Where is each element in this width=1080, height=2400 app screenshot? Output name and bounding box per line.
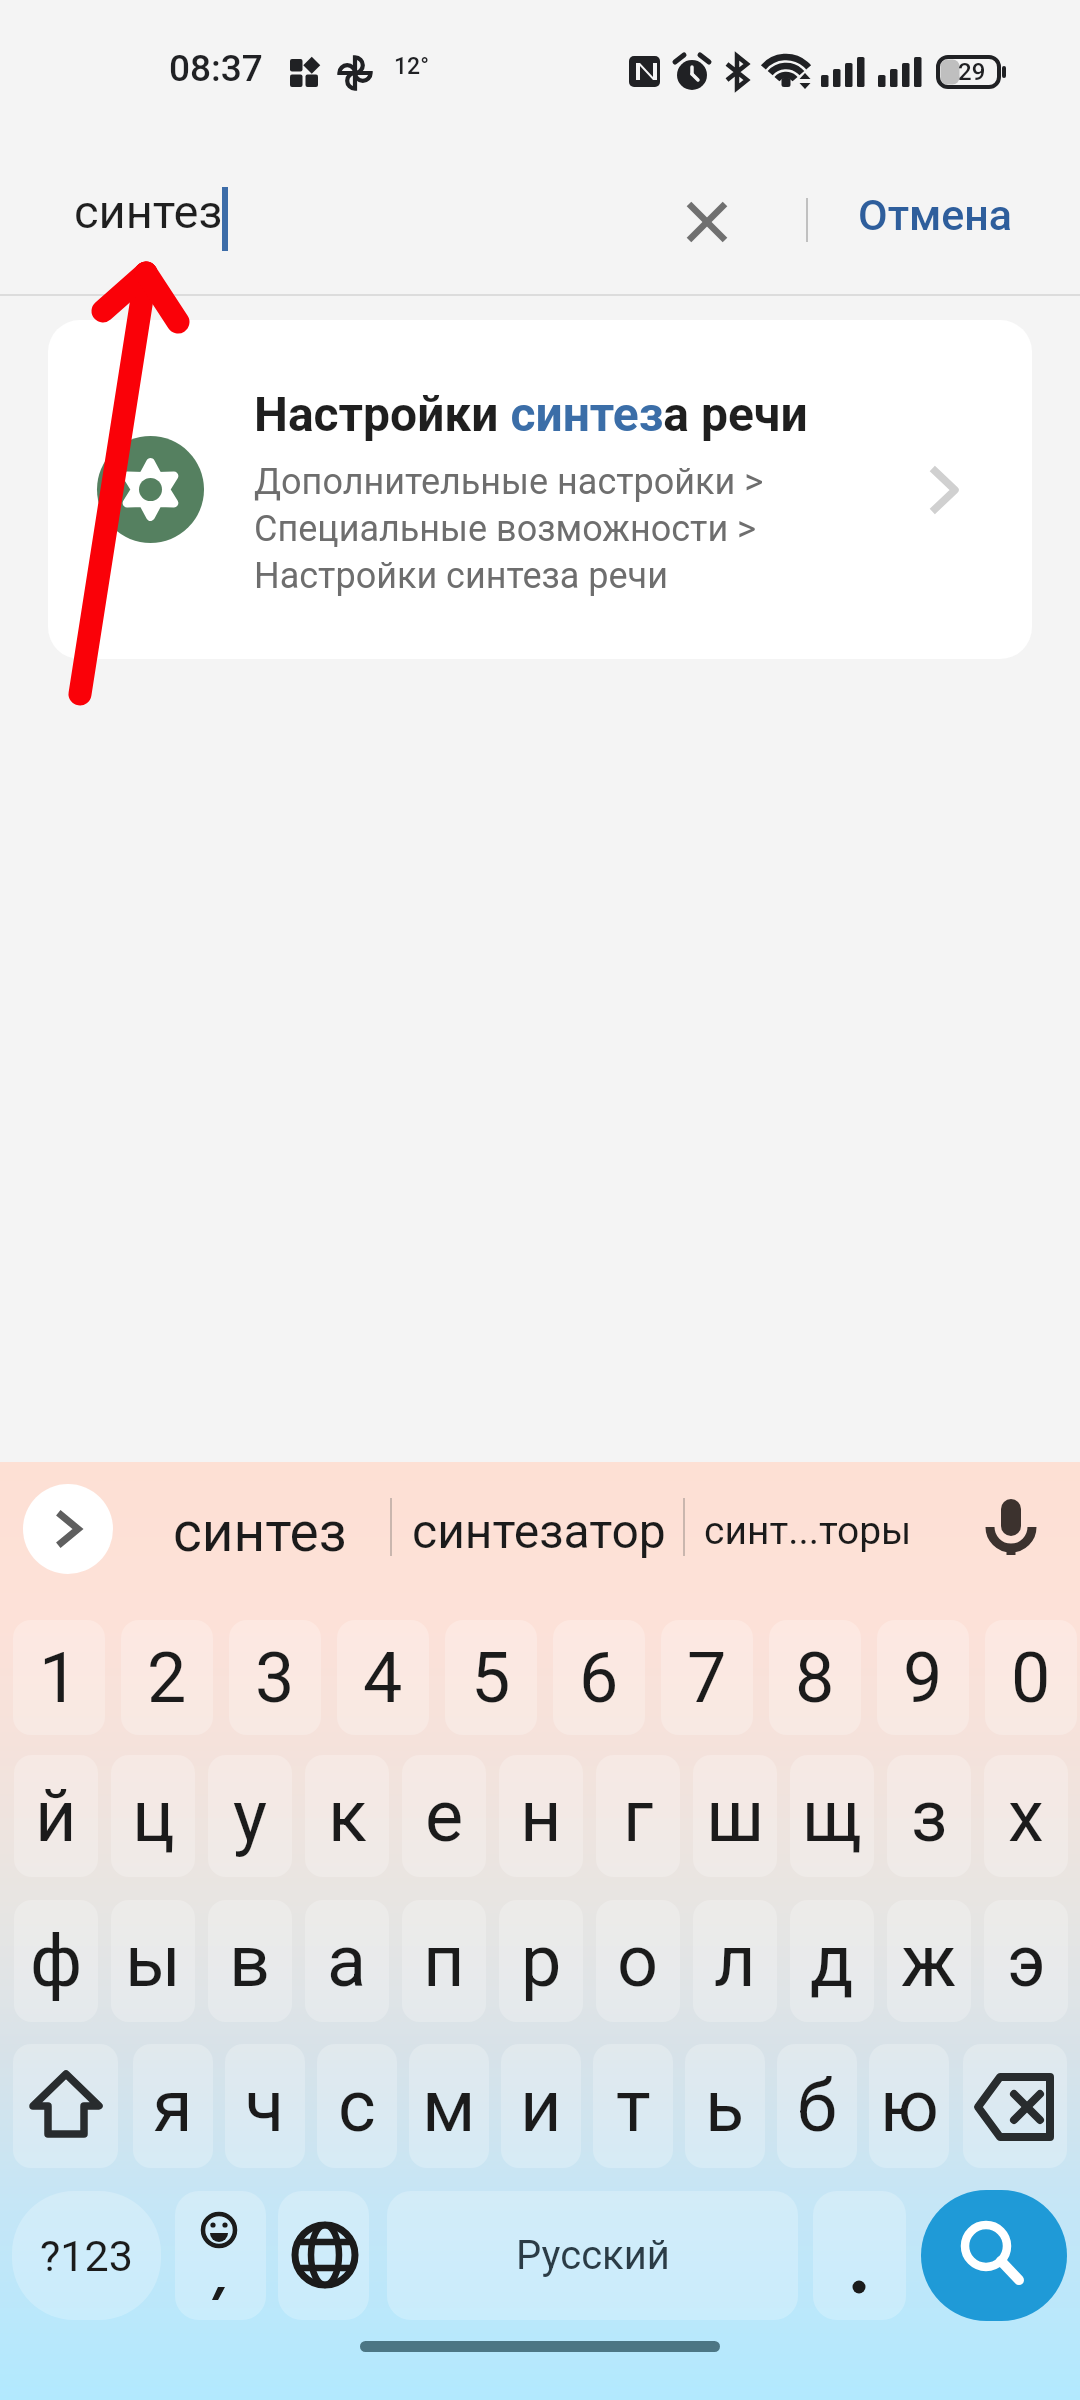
button[interactable]: 9 — [877, 1620, 969, 1735]
button[interactable]: Shift — [13, 2044, 118, 2168]
button[interactable]: ю — [869, 2044, 949, 2168]
button[interactable]: у — [208, 1755, 292, 1877]
staticText: и — [520, 2064, 562, 2148]
button[interactable]: о — [596, 1900, 680, 2022]
button[interactable]: б — [777, 2044, 857, 2168]
button[interactable]: ы — [111, 1900, 195, 2022]
button[interactable]: 1 — [13, 1620, 105, 1735]
staticText: 9 — [903, 1637, 943, 1719]
button[interactable]: щ — [790, 1755, 874, 1877]
staticText: 0 — [1011, 1637, 1051, 1719]
button[interactable]: 2 — [121, 1620, 213, 1735]
staticText: 8 — [795, 1637, 835, 1719]
staticText: м — [422, 2064, 476, 2148]
button[interactable]: 8 — [769, 1620, 861, 1735]
button[interactable]: ц — [111, 1755, 195, 1877]
button[interactable]: Отмена — [838, 168, 1033, 262]
button[interactable]: с — [317, 2044, 397, 2168]
button[interactable]: 0 — [985, 1620, 1077, 1735]
button[interactable]: Clear — [663, 178, 751, 266]
button[interactable]: а — [305, 1900, 389, 2022]
button[interactable]: д — [790, 1900, 874, 2022]
staticText: ы — [125, 1919, 181, 2003]
button[interactable]: я — [133, 2044, 213, 2168]
button[interactable]: 5 — [445, 1620, 537, 1735]
staticText: е — [425, 1774, 464, 1858]
staticText: синт...торы — [704, 1508, 912, 1554]
button[interactable]: ф — [14, 1900, 98, 2022]
staticText: Настройки синтеза речи — [254, 555, 668, 597]
staticText: ч — [245, 2064, 285, 2148]
staticText: э — [1007, 1919, 1046, 2003]
staticText: ж — [901, 1919, 957, 2003]
button[interactable]: Expand suggestions — [23, 1484, 113, 1574]
staticText: 2 — [147, 1637, 187, 1719]
button[interactable]: ?123 — [12, 2191, 161, 2320]
button[interactable]: Emoji — [175, 2191, 266, 2320]
button[interactable]: н — [499, 1755, 583, 1877]
staticText: ?123 — [40, 2231, 133, 2281]
button[interactable]: 6 — [553, 1620, 645, 1735]
button[interactable]: синтезатор — [412, 1503, 666, 1559]
staticText: р — [521, 1919, 562, 2003]
staticText: г — [623, 1774, 654, 1858]
staticText: 08:37 — [169, 47, 263, 90]
staticText: синтез — [74, 184, 223, 239]
staticText: в — [229, 1919, 271, 2003]
button[interactable]: е — [402, 1755, 486, 1877]
button[interactable]: 4 — [337, 1620, 429, 1735]
staticText: з — [911, 1774, 948, 1858]
staticText: д — [810, 1919, 854, 2003]
staticText: Отмена — [858, 190, 1013, 240]
staticText: Специальные возможности > — [254, 508, 756, 550]
staticText: 7 — [687, 1637, 727, 1719]
button[interactable]: Voice input — [966, 1484, 1056, 1574]
button[interactable]: й — [14, 1755, 98, 1877]
staticText: о — [617, 1919, 659, 2003]
button[interactable]: Backspace — [963, 2044, 1067, 2168]
button[interactable]: х — [984, 1755, 1068, 1877]
button[interactable]: и — [501, 2044, 581, 2168]
button[interactable]: з — [887, 1755, 971, 1877]
staticText: х — [1008, 1774, 1044, 1858]
button[interactable]: р — [499, 1900, 583, 2022]
staticText: ь — [705, 2064, 745, 2148]
button[interactable]: Настройки синтеза речи — [48, 320, 1032, 659]
button[interactable]: Change language — [278, 2191, 369, 2320]
staticText: Русский — [516, 2232, 670, 2279]
staticText: синтез — [173, 1500, 347, 1564]
button[interactable]: ч — [225, 2044, 305, 2168]
button[interactable]: Period — [813, 2191, 906, 2320]
button[interactable]: ж — [887, 1900, 971, 2022]
staticText: 4 — [363, 1637, 403, 1719]
staticText: 3 — [255, 1637, 295, 1719]
staticText: н — [520, 1774, 562, 1858]
staticText: а — [327, 1919, 367, 2003]
button[interactable]: ь — [685, 2044, 765, 2168]
button[interactable]: 3 — [229, 1620, 321, 1735]
button[interactable]: Search — [921, 2190, 1067, 2321]
staticText: п — [423, 1919, 465, 2003]
staticText: щ — [802, 1774, 862, 1858]
staticText: синтезатор — [412, 1503, 666, 1559]
button[interactable]: ш — [693, 1755, 777, 1877]
button[interactable]: э — [984, 1900, 1068, 2022]
button[interactable]: в — [208, 1900, 292, 2022]
button[interactable]: м — [409, 2044, 489, 2168]
staticText: ц — [132, 1774, 175, 1858]
button[interactable]: 7 — [661, 1620, 753, 1735]
button[interactable]: Русский — [387, 2191, 798, 2320]
staticText: л — [714, 1919, 756, 2003]
button[interactable]: синтез — [173, 1500, 347, 1564]
button[interactable]: синт...торы — [704, 1508, 912, 1554]
staticText: у — [233, 1774, 268, 1858]
staticText: 29 — [958, 58, 986, 86]
staticText: я — [153, 2064, 193, 2148]
button[interactable]: л — [693, 1900, 777, 2022]
button[interactable]: г — [596, 1755, 680, 1877]
button[interactable]: п — [402, 1900, 486, 2022]
staticText: й — [35, 1774, 77, 1858]
staticText: 12° — [394, 53, 429, 80]
button[interactable]: к — [305, 1755, 389, 1877]
button[interactable]: т — [593, 2044, 673, 2168]
